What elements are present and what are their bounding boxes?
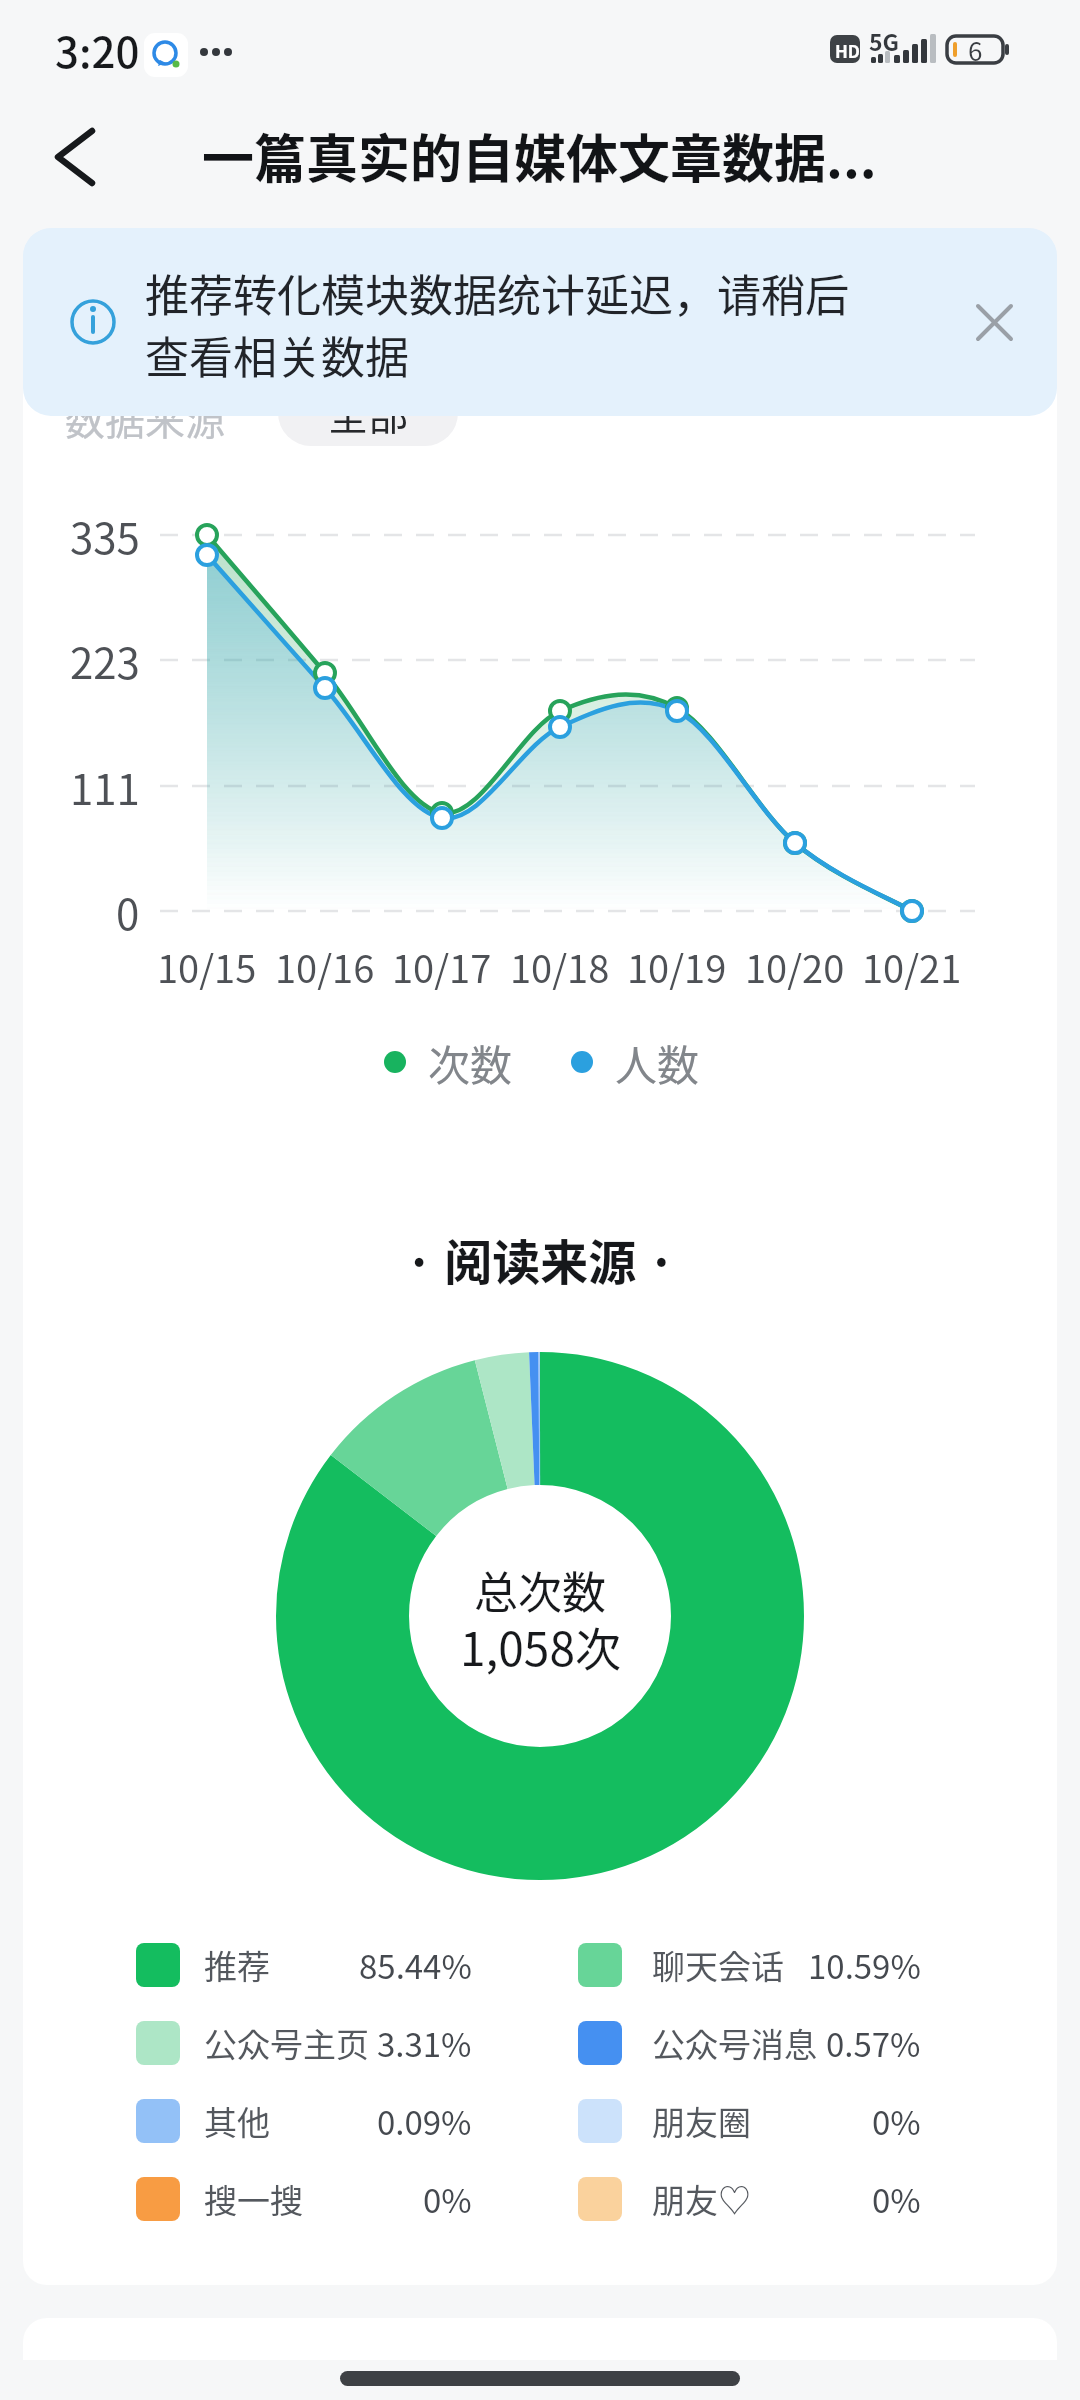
button[interactable]: 朋友圈 (575, 2095, 920, 2147)
staticText: 10.59% (808, 1941, 921, 1989)
staticText: 10/16 (275, 939, 375, 994)
staticText: 聊天会话 (652, 1941, 784, 1989)
staticText: 10/18 (510, 939, 610, 994)
button[interactable]: 全部 (278, 380, 458, 446)
staticText: 搜一搜 (204, 2175, 303, 2223)
staticText: 数据来源 (65, 389, 225, 447)
staticText: 0.09% (377, 2097, 472, 2145)
staticText: 85.44% (359, 1941, 472, 1989)
staticText: 0% (872, 2097, 921, 2145)
staticText: 0 (116, 881, 140, 941)
staticText: 全部 (328, 384, 408, 442)
staticText: 335 (70, 505, 140, 565)
staticText: 推荐转化模块数据统计延迟，请稍后 查看相关数据 (145, 261, 849, 386)
staticText: 10/15 (157, 939, 257, 994)
staticText: 223 (70, 630, 140, 690)
staticText: 次数 (428, 1032, 513, 1093)
staticText: 朋友♡ (652, 2175, 751, 2223)
staticText: 10/17 (392, 939, 492, 994)
staticText: 推荐 (204, 1941, 270, 1989)
button[interactable]: 公众号消息 (575, 2017, 920, 2069)
staticText: 10/20 (745, 939, 845, 994)
staticText: 10/21 (862, 939, 962, 994)
staticText: 10/19 (627, 939, 727, 994)
staticText: 其他 (204, 2097, 270, 2145)
staticText: 0% (872, 2175, 921, 2223)
button[interactable] (40, 120, 110, 195)
staticText: 一篇真实的自媒体文章数据... (202, 118, 877, 193)
staticText: 朋友圈 (652, 2097, 751, 2145)
button[interactable]: 聊天会话 (575, 1939, 920, 1991)
button[interactable]: 朋友♡ (575, 2173, 920, 2225)
button[interactable] (958, 286, 1030, 358)
staticText: 5G (869, 24, 900, 57)
button[interactable]: 其他 (130, 2095, 475, 2147)
staticText: 0.57% (826, 2019, 921, 2067)
staticText: 1,058次 (460, 1613, 621, 1680)
staticText: 111 (70, 756, 140, 816)
staticText: 公众号主页 (204, 2019, 369, 2067)
staticText: · 阅读来源 · (405, 1224, 676, 1294)
staticText: 公众号消息 (652, 2019, 817, 2067)
staticText: 6 (968, 31, 983, 65)
button[interactable]: 搜一搜 (130, 2173, 475, 2225)
staticText: 人数 (615, 1032, 700, 1093)
button[interactable]: 推荐 (130, 1939, 475, 1991)
button[interactable]: 公众号主页 (130, 2017, 475, 2069)
staticText: 3.31% (377, 2019, 472, 2067)
staticText: 0% (423, 2175, 472, 2223)
staticText: 3:20 (55, 19, 140, 80)
staticText: HD (835, 38, 861, 63)
staticText: 总次数 (474, 1558, 606, 1622)
